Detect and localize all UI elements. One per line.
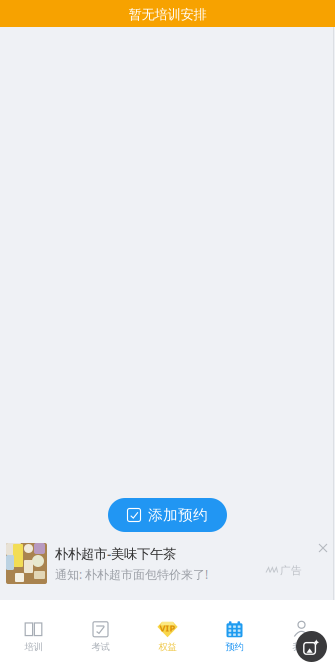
staticText: 预约 (225, 641, 243, 653)
button[interactable]: Close ad (312, 537, 334, 559)
button[interactable]: VIP (134, 616, 201, 658)
staticText: VIP (159, 622, 175, 634)
button[interactable]: 培训 (0, 616, 67, 658)
staticText: 广告 (280, 564, 302, 577)
button[interactable]: 预约 (201, 616, 268, 658)
staticText: 我的 (292, 641, 310, 653)
staticText: 暂无培训安排 (128, 6, 206, 23)
button[interactable]: 我的 (268, 616, 335, 658)
staticText: 培训 (24, 641, 42, 653)
staticText: 考试 (91, 641, 109, 653)
staticText: 朴朴超市-美味下午茶 (55, 545, 176, 562)
button[interactable]: 添加预约 (108, 498, 227, 532)
staticText: 通知: 朴朴超市面包特价来了! (55, 566, 208, 582)
button[interactable]: 考试 (67, 616, 134, 658)
button[interactable]: Screenshot (296, 631, 327, 662)
staticText: 权益 (158, 641, 176, 653)
staticText: 添加预约 (148, 506, 208, 524)
